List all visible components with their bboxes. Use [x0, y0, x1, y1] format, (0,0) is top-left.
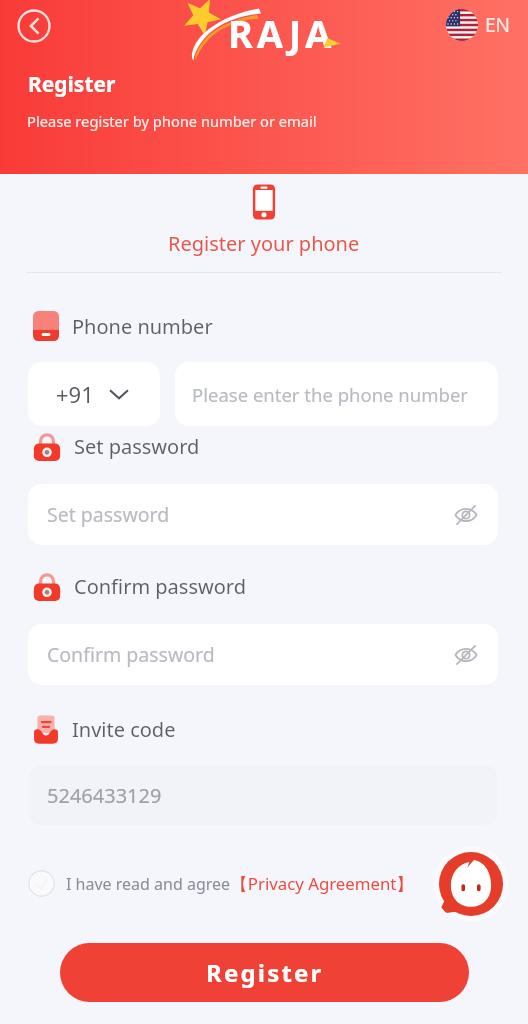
staticText: Register [28, 70, 116, 99]
button[interactable]: 【Privacy Agreement】 [231, 872, 414, 895]
staticText: Confirm password [74, 573, 246, 600]
staticText: Phone number [72, 313, 213, 340]
staticText: RAJA [228, 7, 336, 59]
staticText: Set password [74, 433, 200, 460]
staticText: Please register by phone number or email [27, 111, 317, 131]
staticText: 5246433129 [47, 782, 162, 809]
button[interactable]: 5246433129 [28, 765, 498, 825]
button[interactable]: Agree to privacy agreement [28, 870, 55, 897]
button[interactable]: Register [60, 943, 469, 1002]
staticText: I have read and agree [66, 873, 231, 895]
staticText: Register your phone [168, 230, 360, 257]
staticText: Invite code [72, 716, 176, 743]
button[interactable]: Set password [28, 484, 498, 545]
staticText: Please enter the phone number [192, 382, 468, 407]
button[interactable]: Toggle password visibility [450, 639, 482, 671]
staticText: Set password [47, 501, 170, 528]
button[interactable]: Please enter the phone number [175, 362, 498, 426]
button[interactable]: Customer support [433, 846, 509, 922]
button[interactable]: Language EN [443, 5, 514, 45]
staticText: Register [206, 956, 324, 989]
button[interactable]: Confirm password [28, 624, 498, 685]
staticText: +91 [56, 379, 94, 409]
button[interactable]: Back [16, 8, 52, 44]
button[interactable]: +91 [28, 362, 160, 426]
staticText: EN [485, 12, 511, 38]
button[interactable]: Toggle password visibility [450, 499, 482, 531]
staticText: Confirm password [47, 641, 215, 668]
